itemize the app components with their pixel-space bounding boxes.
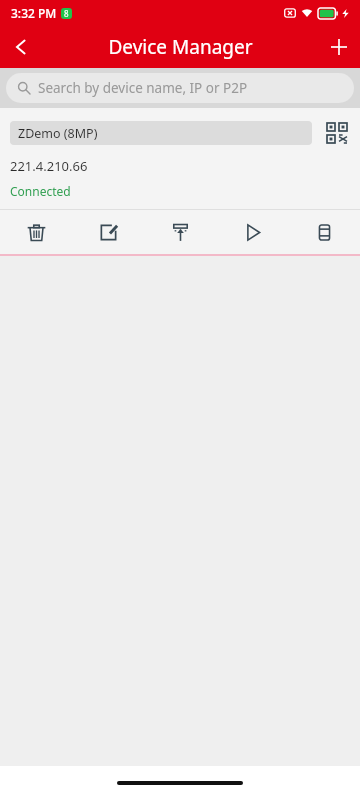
button[interactable]: ZDemo (8MP) <box>10 121 312 145</box>
button[interactable]: QR code <box>322 118 352 148</box>
staticText: 3:32 PM <box>11 5 57 21</box>
staticText: Device Manager <box>108 34 253 60</box>
button[interactable]: Storage <box>288 210 360 254</box>
button[interactable]: Add device <box>318 26 360 68</box>
button[interactable]: Upgrade <box>144 210 216 254</box>
button[interactable]: Edit <box>72 210 144 254</box>
staticText: 8 <box>64 8 69 19</box>
staticText: Connected <box>10 183 71 199</box>
button[interactable]: Back <box>0 26 42 68</box>
button[interactable]: Play <box>216 210 288 254</box>
staticText: 221.4.210.66 <box>10 157 88 175</box>
staticText: Search by device name, IP or P2P <box>38 79 248 97</box>
button[interactable]: Search by device name, IP or P2P <box>6 73 354 103</box>
button[interactable]: Delete <box>0 210 72 254</box>
staticText: ZDemo (8MP) <box>18 125 98 142</box>
